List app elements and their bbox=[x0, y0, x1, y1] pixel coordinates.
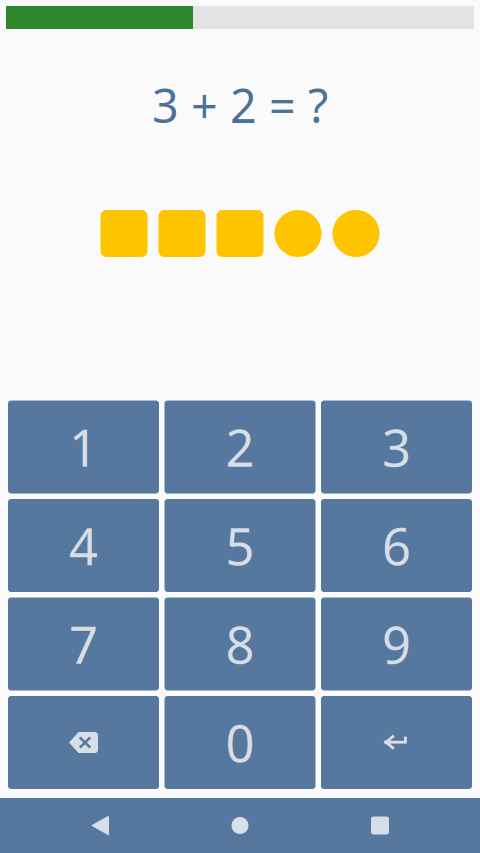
button[interactable]: 6 bbox=[321, 499, 472, 592]
staticText: 7 bbox=[69, 610, 98, 678]
button[interactable]: 0 bbox=[164, 696, 315, 789]
staticText: 2 bbox=[225, 413, 254, 481]
button[interactable]: Home bbox=[200, 798, 280, 853]
button[interactable]: Enter bbox=[321, 696, 472, 789]
staticText: 4 bbox=[69, 512, 98, 579]
button[interactable]: 5 bbox=[164, 499, 315, 592]
button[interactable]: Recent apps bbox=[280, 798, 480, 853]
button[interactable]: 4 bbox=[8, 499, 159, 592]
button[interactable]: 2 bbox=[164, 400, 315, 493]
button[interactable]: 8 bbox=[164, 597, 315, 690]
staticText: 1 bbox=[69, 413, 98, 481]
button[interactable]: Back bbox=[0, 798, 200, 853]
staticText: 3 bbox=[382, 413, 411, 481]
button[interactable]: 9 bbox=[321, 597, 472, 690]
button[interactable]: 7 bbox=[8, 597, 159, 690]
button[interactable]: 1 bbox=[8, 400, 159, 493]
button[interactable]: 3 bbox=[321, 400, 472, 493]
button[interactable]: Backspace bbox=[8, 696, 159, 789]
staticText: 6 bbox=[382, 512, 411, 579]
staticText: 3 + 2 = ? bbox=[152, 74, 328, 136]
staticText: 5 bbox=[225, 512, 254, 579]
staticText: 0 bbox=[225, 709, 254, 776]
staticText: 9 bbox=[382, 610, 411, 678]
staticText: 8 bbox=[225, 610, 254, 678]
